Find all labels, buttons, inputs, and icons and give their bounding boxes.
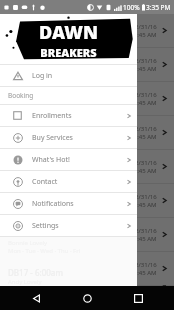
- button[interactable]: Back: [21, 286, 51, 310]
- staticText: 100%: [123, 3, 140, 12]
- staticText: 6:00 AM - 6:45 AM: [106, 201, 157, 209]
- staticText: 6:00 AM - 6:45 AM: [106, 99, 157, 107]
- staticText: 6:00 AM - 6:45 AM: [106, 269, 157, 277]
- staticText: DB17 - 6:45am: [6, 51, 62, 62]
- staticText: Andy Lovely: [6, 266, 40, 274]
- staticText: 6:00 AM - 6:45 AM: [106, 65, 157, 73]
- button[interactable]: Settings: [0, 215, 137, 236]
- button[interactable]: Recent apps: [123, 286, 153, 310]
- staticText: Andy Lovely: [6, 96, 40, 104]
- staticText: Mon · Tue · Wed · Thu · Fri: [6, 104, 79, 112]
- button[interactable]: Home: [72, 286, 102, 310]
- staticText: Buy Services: [32, 133, 73, 143]
- staticText: Andy Lovely: [6, 198, 40, 206]
- staticText: DB17 - 8:00am: [6, 153, 62, 164]
- staticText: BREAKERS: [40, 45, 97, 60]
- button[interactable]: Buy Services: [0, 127, 137, 148]
- staticText: 3:35 PM: [146, 3, 171, 12]
- staticText: 11/4/16 - 12/31/16: [105, 125, 157, 133]
- staticText: Settings: [32, 221, 59, 231]
- staticText: DB17 - 8:45am: [6, 187, 62, 198]
- staticText: DB17 - 9:00am: [6, 221, 62, 232]
- staticText: Andy Lovely: [6, 232, 40, 240]
- staticText: Andy Lovely: [6, 164, 40, 172]
- staticText: DB17 - 7:45am: [6, 119, 62, 130]
- staticText: Mon · Tue · Wed · Thu · Fri: [6, 36, 79, 44]
- staticText: Mon · Tue · Wed · Thu · Fri: [6, 206, 79, 214]
- staticText: 6:00 AM - 6:45 AM: [106, 31, 157, 39]
- staticText: Mon · Tue · Wed · Thu · Fri: [6, 172, 79, 180]
- button[interactable]: Warning: [0, 65, 137, 86]
- staticText: DB17 - 6:00am: [6, 17, 62, 28]
- staticText: 11/4/16 - 12/31/16: [105, 261, 157, 269]
- staticText: 11/4/16 - 12/31/16: [105, 227, 157, 235]
- staticText: Andy Lovely: [6, 130, 40, 138]
- staticText: What's Hot!: [32, 155, 70, 165]
- staticText: DAWN: [39, 20, 98, 45]
- staticText: Enrollments: [32, 111, 72, 121]
- other: Warning: [13, 71, 23, 81]
- button[interactable]: Notifications: [0, 193, 137, 214]
- staticText: Booking: [8, 91, 34, 100]
- staticText: 6:00 AM - 6:45 AM: [106, 133, 157, 141]
- staticText: 11/4/16 - 12/31/16: [105, 57, 157, 65]
- button[interactable]: Contact: [0, 171, 137, 192]
- staticText: DB17 - 6:00am: [8, 267, 64, 278]
- staticText: 11/4/16 - 12/31/16: [105, 23, 157, 31]
- button[interactable]: Enrollments: [0, 105, 137, 126]
- staticText: 11/4/16 - 12/31/16: [105, 159, 157, 167]
- staticText: Mon · Tue · Wed · Thu · Fri: [6, 138, 79, 146]
- staticText: Log in: [32, 71, 53, 81]
- staticText: 6:00 AM - 6:45 AM: [106, 235, 157, 243]
- staticText: Contact: [32, 177, 58, 187]
- staticText: Andy Lovely: [6, 62, 40, 70]
- staticText: Mon · Tue · Wed · Thu · Fri: [6, 70, 79, 78]
- staticText: DB17 - 7:00am: [6, 85, 62, 96]
- button[interactable]: What's Hot!: [0, 149, 137, 170]
- staticText: 6:00 AM - 6:45 AM: [106, 167, 157, 175]
- staticText: Andy Lovely: [6, 28, 40, 36]
- staticText: 11/4/16 - 12/31/16: [105, 91, 157, 99]
- staticText: 11/4/16 - 12/31/16: [105, 193, 157, 201]
- button[interactable]: DAWN: [0, 14, 137, 64]
- staticText: Notifications: [32, 199, 74, 209]
